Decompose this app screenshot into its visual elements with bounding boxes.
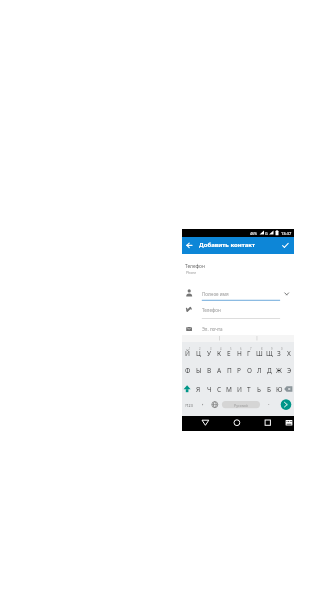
button[interactable]: К xyxy=(214,345,224,362)
staticText: Д xyxy=(267,366,272,375)
staticText: Б xyxy=(267,385,271,394)
button[interactable] xyxy=(209,398,221,412)
button[interactable]: В xyxy=(204,362,214,379)
staticText: Телефон xyxy=(202,307,221,313)
button[interactable]: Б xyxy=(264,381,274,398)
staticText: Э xyxy=(287,366,292,375)
staticText: 0 xyxy=(281,347,283,351)
staticText: 2 xyxy=(199,347,201,351)
button[interactable] xyxy=(182,381,193,398)
button[interactable] xyxy=(182,237,199,255)
button[interactable]: М xyxy=(224,381,234,398)
staticText: Й xyxy=(185,349,190,358)
button[interactable] xyxy=(182,320,294,334)
staticText: Я xyxy=(196,385,201,394)
button[interactable]: И xyxy=(234,381,244,398)
staticText: Добавить контакт xyxy=(199,241,256,249)
button[interactable]: Г xyxy=(244,345,254,362)
button[interactable]: Щ xyxy=(264,345,274,362)
button[interactable]: О xyxy=(244,362,254,379)
button[interactable]: Ь xyxy=(254,381,264,398)
staticText: Т xyxy=(247,385,251,394)
staticText: З xyxy=(277,349,281,358)
button[interactable]: Х xyxy=(284,345,294,362)
button[interactable]: Р xyxy=(234,362,244,379)
button[interactable] xyxy=(197,398,208,412)
staticText: Русский xyxy=(234,403,248,408)
staticText: Ш xyxy=(256,349,263,358)
staticText: 3 xyxy=(210,347,212,351)
button[interactable]: Ч xyxy=(204,381,214,398)
button[interactable] xyxy=(282,416,294,431)
button[interactable] xyxy=(263,398,274,412)
staticText: И xyxy=(237,385,242,394)
staticText: К xyxy=(217,349,222,358)
staticText: Телефон xyxy=(185,263,205,270)
button[interactable]: Л xyxy=(254,362,264,379)
staticText: Г xyxy=(247,349,251,358)
button[interactable]: Т xyxy=(244,381,254,398)
button[interactable]: Е xyxy=(224,345,234,362)
button[interactable]: Ы xyxy=(193,362,204,379)
button[interactable] xyxy=(284,381,294,398)
button[interactable]: Я xyxy=(193,381,204,398)
staticText: . xyxy=(268,399,270,407)
staticText: А xyxy=(217,366,222,375)
staticText: 5 xyxy=(230,347,232,351)
button[interactable]: С xyxy=(214,381,224,398)
button[interactable]: П xyxy=(224,362,234,379)
button[interactable] xyxy=(182,381,192,398)
button[interactable]: Ш xyxy=(254,345,264,362)
button[interactable] xyxy=(260,416,275,431)
button[interactable]: Ф xyxy=(182,362,193,379)
staticText: 1 xyxy=(189,347,191,351)
staticText: ?123 xyxy=(185,403,193,408)
staticText: Ч xyxy=(207,385,212,394)
staticText: П xyxy=(227,366,232,375)
button[interactable]: Э xyxy=(284,362,294,379)
staticText: Р xyxy=(237,366,241,375)
button[interactable] xyxy=(222,398,260,412)
staticText: Phone xyxy=(186,270,197,275)
staticText: В xyxy=(207,366,212,375)
button[interactable] xyxy=(279,398,293,412)
button[interactable] xyxy=(229,416,244,431)
staticText: , xyxy=(202,399,204,407)
staticText: Ф xyxy=(185,366,191,375)
staticText: Щ xyxy=(266,349,273,358)
button[interactable]: Н xyxy=(234,345,244,362)
staticText: Ж xyxy=(276,366,282,375)
staticText: 9 xyxy=(271,347,273,351)
button[interactable]: Ю xyxy=(274,381,284,398)
staticText: G xyxy=(265,231,268,236)
staticText: Эл. почта xyxy=(202,326,223,332)
staticText: Ь xyxy=(257,385,261,394)
staticText: 8 xyxy=(261,347,263,351)
staticText: 46% xyxy=(250,231,258,236)
button[interactable] xyxy=(198,416,213,431)
button[interactable]: Д xyxy=(264,362,274,379)
button[interactable]: Ж xyxy=(274,362,284,379)
button[interactable] xyxy=(182,302,294,320)
staticText: 13:37 xyxy=(281,231,292,236)
button[interactable]: Ц xyxy=(193,345,204,362)
staticText: О xyxy=(247,366,252,375)
button[interactable] xyxy=(183,398,195,412)
staticText: Полное имя xyxy=(202,291,229,297)
button[interactable] xyxy=(277,237,294,255)
button[interactable] xyxy=(284,381,294,398)
staticText: У xyxy=(207,349,212,358)
staticText: Ы xyxy=(196,366,202,375)
staticText: 7 xyxy=(250,347,252,351)
staticText: Л xyxy=(257,366,262,375)
button[interactable]: Й xyxy=(182,345,193,362)
staticText: С xyxy=(217,385,222,394)
staticText: Е xyxy=(227,349,231,358)
button[interactable]: А xyxy=(214,362,224,379)
button[interactable] xyxy=(182,284,294,302)
staticText: М xyxy=(226,385,232,394)
button[interactable]: З xyxy=(274,345,284,362)
staticText: Ю xyxy=(276,385,283,394)
staticText: Ц xyxy=(196,349,201,358)
button[interactable]: У xyxy=(204,345,214,362)
